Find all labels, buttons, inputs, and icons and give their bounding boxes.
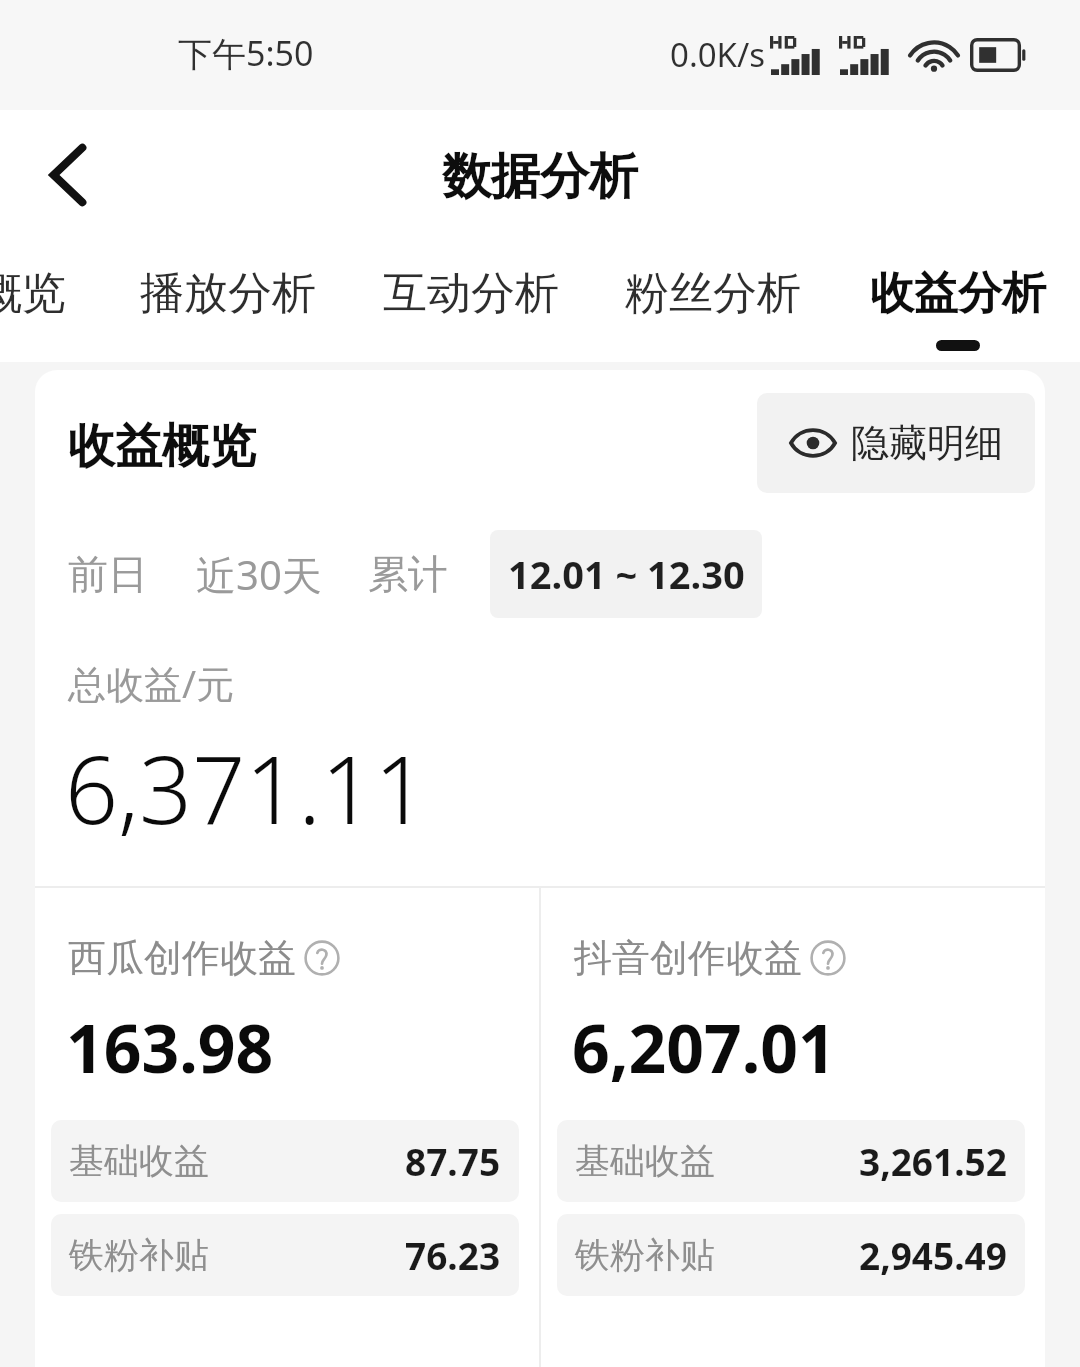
button[interactable]: 播放分析 bbox=[103, 240, 353, 362]
staticText: 隐藏明细 bbox=[851, 419, 1003, 467]
button[interactable]: 粉丝分析 bbox=[588, 240, 838, 362]
staticText: 6,371.11 bbox=[65, 725, 428, 852]
staticText: 播放分析 bbox=[140, 266, 316, 321]
staticText: 基础收益 bbox=[69, 1139, 209, 1183]
staticText: 西瓜创作收益 bbox=[68, 934, 296, 982]
staticText: 163.98 bbox=[66, 1002, 274, 1092]
staticText: 概览 bbox=[0, 266, 66, 321]
staticText: 收益分析 bbox=[870, 266, 1046, 321]
staticText: 76.23 bbox=[405, 1230, 501, 1280]
staticText: 下午5:50 bbox=[178, 30, 314, 76]
button[interactable]: 12.01 ~ 12.30 bbox=[490, 530, 762, 618]
staticText: 3,261.52 bbox=[859, 1136, 1007, 1186]
staticText: 铁粉补贴 bbox=[69, 1233, 209, 1277]
staticText: 粉丝分析 bbox=[625, 266, 801, 321]
staticText: 基础收益 bbox=[575, 1139, 715, 1183]
button[interactable]: 隐藏明细 bbox=[757, 393, 1035, 493]
staticText: 近30天 bbox=[196, 547, 322, 602]
button[interactable]: 收益分析 bbox=[833, 240, 1080, 362]
staticText: 收益概览 bbox=[68, 417, 256, 476]
button[interactable]: 铁粉补贴 bbox=[51, 1214, 519, 1296]
button[interactable]: 前日 bbox=[68, 549, 148, 599]
button[interactable]: 基础收益 bbox=[557, 1120, 1025, 1202]
button[interactable]: 互动分析 bbox=[346, 240, 596, 362]
staticText: 87.75 bbox=[405, 1136, 501, 1186]
button[interactable]: 累计 bbox=[368, 549, 448, 599]
button[interactable]: 返回 bbox=[20, 127, 116, 223]
staticText: 12.01 ~ 12.30 bbox=[508, 548, 745, 600]
button[interactable]: 概览 bbox=[0, 240, 147, 362]
staticText: 抖音创作收益 bbox=[574, 934, 802, 982]
button[interactable]: 铁粉补贴 bbox=[557, 1214, 1025, 1296]
staticText: 前日 bbox=[68, 549, 148, 599]
staticText: 数据分析 bbox=[442, 146, 638, 208]
button[interactable]: 基础收益 bbox=[51, 1120, 519, 1202]
staticText: 2,945.49 bbox=[859, 1230, 1007, 1280]
button[interactable]: 近30天 bbox=[196, 547, 322, 602]
staticText: 互动分析 bbox=[383, 266, 559, 321]
staticText: 6,207.01 bbox=[572, 1002, 836, 1092]
staticText: 累计 bbox=[368, 549, 448, 599]
staticText: 总收益/元 bbox=[68, 657, 235, 709]
staticText: 0.0K/s bbox=[670, 32, 766, 77]
staticText: 铁粉补贴 bbox=[575, 1233, 715, 1277]
